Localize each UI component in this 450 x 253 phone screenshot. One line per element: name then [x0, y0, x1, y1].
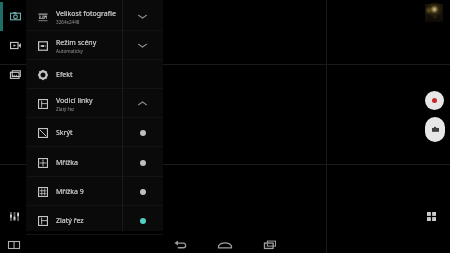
button[interactable]: Switch camera [8, 241, 20, 249]
button[interactable]: Video mode [0, 31, 26, 60]
staticText: Efekt [56, 70, 73, 80]
button[interactable]: Efekt [26, 60, 163, 89]
button[interactable]: Recents [264, 240, 276, 249]
button[interactable]: Take photo [425, 117, 445, 142]
button[interactable]: Camera mode [0, 2, 26, 31]
button[interactable]: Grid view [427, 212, 436, 221]
button[interactable]: Home [218, 240, 232, 249]
button[interactable]: Back [174, 240, 186, 249]
button[interactable]: Skrýt [26, 118, 163, 147]
button[interactable]: Record video [425, 91, 444, 110]
button[interactable]: Režim scény [26, 31, 163, 60]
staticText: Režim scény [56, 38, 97, 48]
button[interactable]: Mřížka 9 [26, 177, 163, 206]
button[interactable]: Mřížka [26, 148, 163, 177]
staticText: Zlatý řez [56, 106, 75, 112]
button[interactable]: Vodicí linky [26, 89, 163, 118]
staticText: Automaticky [56, 48, 83, 54]
staticText: Velikost fotografie [56, 9, 116, 19]
staticText: 3264x2448 [56, 19, 80, 25]
button[interactable]: Zlatý řez [26, 206, 163, 235]
staticText: Mřížka 9 [56, 187, 84, 197]
staticText: Zlatý řez [56, 216, 84, 226]
staticText: Vodicí linky [56, 96, 93, 106]
staticText: Mřížka [56, 158, 79, 168]
button[interactable]: Velikost fotografie [26, 2, 163, 31]
staticText: Skrýt [56, 128, 73, 138]
button[interactable]: Settings [10, 212, 19, 221]
button[interactable]: More modes [0, 60, 26, 89]
button[interactable]: Gallery [425, 4, 443, 22]
